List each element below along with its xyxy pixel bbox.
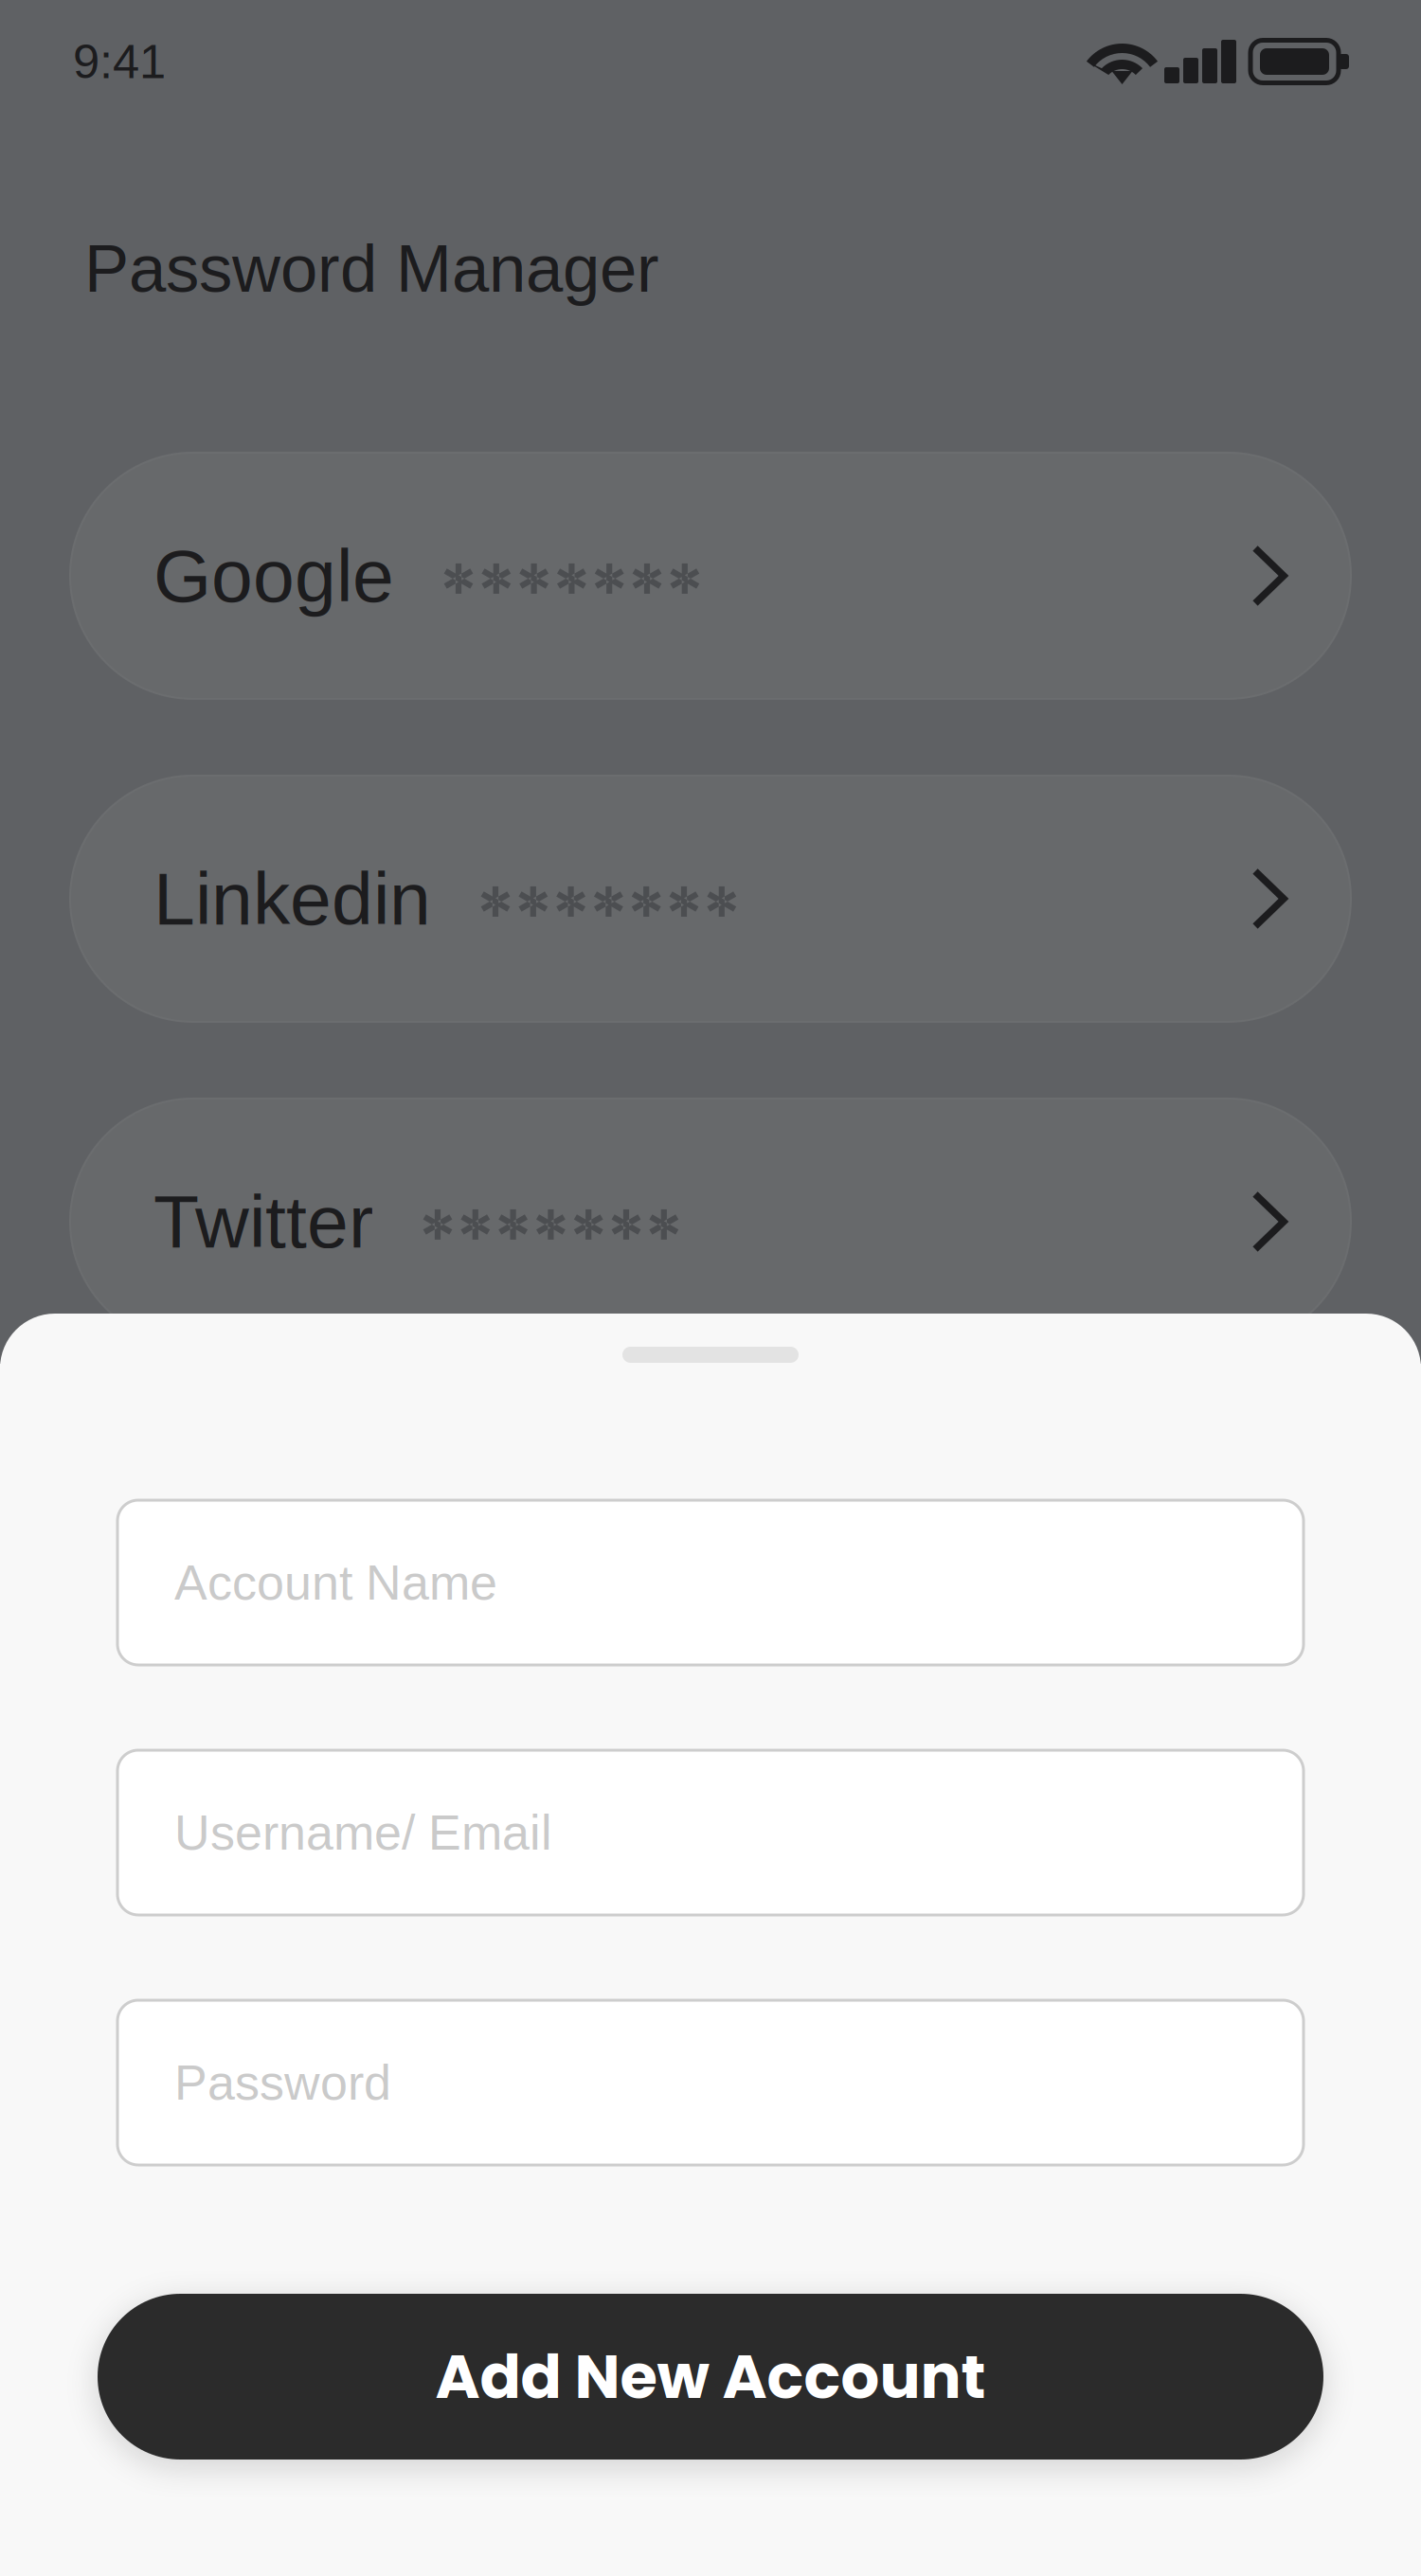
button[interactable]: Linkedin bbox=[70, 776, 1351, 1022]
button[interactable]: Google bbox=[70, 453, 1351, 699]
button[interactable]: Twitter bbox=[70, 1098, 1351, 1345]
button[interactable]: Password bbox=[117, 2000, 1304, 2165]
staticText: 9:41 bbox=[73, 35, 166, 88]
staticText: Username/ Email bbox=[174, 1805, 552, 1860]
staticText: Google bbox=[153, 534, 394, 617]
button[interactable]: Account Name bbox=[117, 1500, 1304, 1665]
staticText: Twitter bbox=[153, 1180, 373, 1263]
button[interactable]: Add New Account bbox=[98, 2294, 1323, 2460]
staticText: Password bbox=[174, 2055, 391, 2110]
button[interactable]: Username/ Email bbox=[117, 1750, 1304, 1915]
staticText: Password Manager bbox=[84, 231, 659, 306]
staticText: Linkedin bbox=[153, 857, 431, 940]
staticText: Add New Account bbox=[435, 2334, 986, 2419]
staticText: Account Name bbox=[174, 1555, 497, 1610]
